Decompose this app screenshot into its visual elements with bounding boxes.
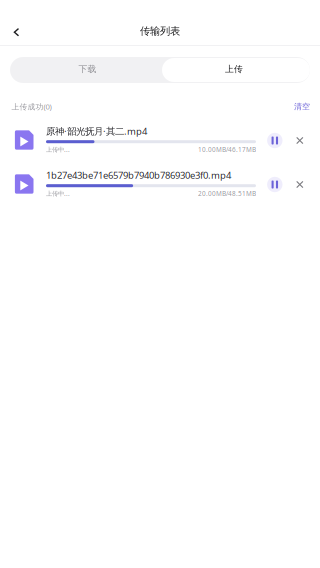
staticText: 下载 — [78, 63, 96, 75]
button[interactable]: 下载 — [12, 56, 162, 82]
staticText: 清空 — [294, 101, 310, 112]
button[interactable]: Back — [1, 15, 31, 49]
button[interactable]: Pause — [262, 122, 288, 158]
staticText: 上传中... — [46, 189, 70, 198]
button[interactable]: 清空 — [287, 99, 317, 113]
staticText: 上传成功(0) — [11, 101, 51, 112]
staticText: 传输列表 — [140, 25, 180, 38]
button[interactable]: 上传 — [160, 57, 308, 81]
staticText: 1b27e43be71e6579b7940b786930e3f0.mp4 — [46, 169, 231, 181]
staticText: 上传 — [225, 63, 243, 75]
staticText: 20.00MB/48.51MB — [198, 189, 256, 198]
button[interactable]: Pause — [262, 166, 288, 202]
staticText: 10.00MB/46.17MB — [198, 145, 256, 154]
staticText: 原神·韶光抚月·其二.mp4 — [46, 125, 147, 137]
button[interactable]: Cancel — [289, 122, 311, 158]
button[interactable]: Cancel — [289, 166, 311, 202]
staticText: 上传中... — [46, 145, 70, 154]
